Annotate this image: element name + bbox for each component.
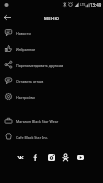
button[interactable]: YouTube — [74, 151, 86, 163]
staticText: 13:49 — [90, 2, 102, 8]
staticText: Оставить отзыв — [16, 79, 44, 84]
button[interactable]: Odnoklassniki — [59, 151, 71, 163]
button[interactable]: Cafe Black Star — [0, 128, 103, 144]
button[interactable]: Settings — [0, 88, 103, 104]
button[interactable]: Back — [0, 11, 14, 24]
button[interactable]: VK — [14, 151, 26, 163]
button[interactable]: Leave a review — [0, 72, 103, 88]
staticText: Настройки — [16, 95, 35, 100]
button[interactable]: Favorites — [0, 40, 103, 56]
button[interactable]: News — [0, 24, 103, 40]
staticText: МЕНЮ — [44, 15, 60, 21]
button[interactable]: Facebook — [29, 151, 41, 163]
button[interactable]: Recommend to friends — [0, 56, 103, 72]
button[interactable]: Black Star Wear store — [0, 112, 103, 128]
button[interactable]: Instagram — [45, 151, 57, 163]
staticText: Порекомендовать друзьям — [16, 63, 64, 68]
staticText: Cafe Black Star Inc. — [16, 135, 49, 140]
staticText: Магазин Black Star Wear — [16, 119, 59, 124]
staticText: Новости — [16, 31, 31, 36]
staticText: Избранное — [16, 47, 36, 52]
staticText: LTE — [80, 2, 86, 6]
